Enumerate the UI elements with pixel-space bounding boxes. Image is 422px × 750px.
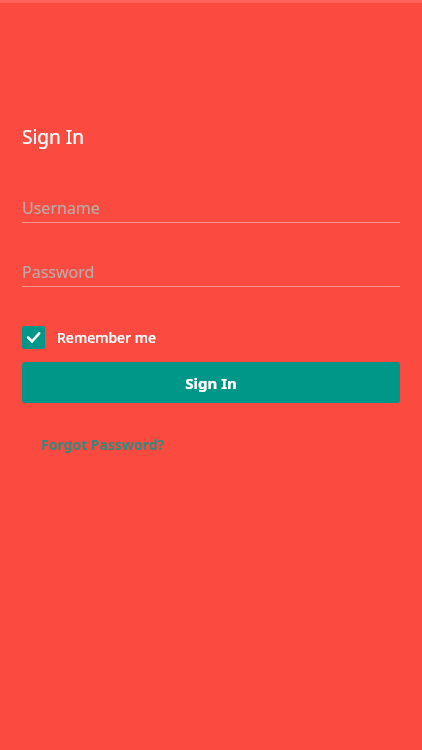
staticText: Username [22, 197, 100, 219]
button[interactable]: Password [22, 261, 400, 287]
staticText: Password [22, 261, 95, 283]
button[interactable]: Remember me [22, 324, 157, 350]
staticText: Forgot Password? [41, 435, 165, 454]
button[interactable]: Sign In [22, 362, 400, 403]
staticText: Remember me [57, 328, 157, 347]
staticText: Sign In [185, 373, 237, 393]
button[interactable]: Username [22, 197, 400, 223]
staticText: Sign In [22, 124, 84, 150]
button[interactable]: Forgot Password? [41, 435, 165, 454]
